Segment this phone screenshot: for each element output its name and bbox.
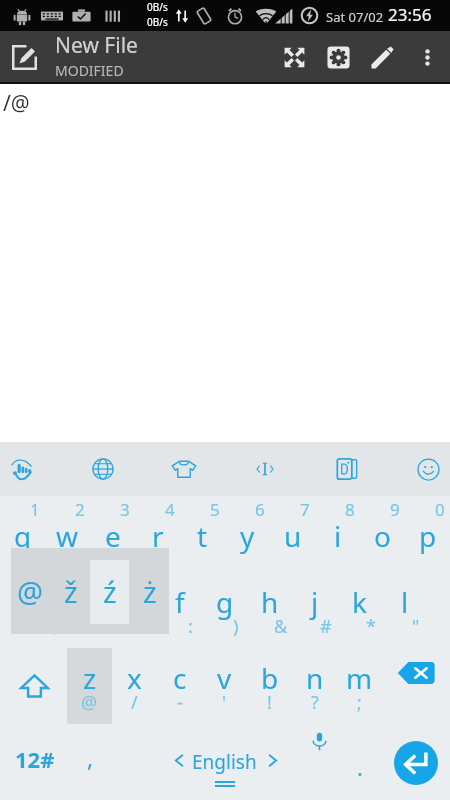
button[interactable]: a — [22, 572, 67, 648]
button[interactable]: k — [337, 572, 382, 648]
staticText: Sat 07/02 — [326, 8, 384, 26]
staticText: 7 — [300, 498, 310, 521]
staticText: & — [274, 614, 288, 639]
staticText: h — [261, 583, 279, 621]
button[interactable]: h — [247, 572, 292, 648]
button[interactable]: m — [337, 648, 382, 724]
button[interactable]: @ — [11, 560, 50, 624]
button[interactable]: b — [247, 648, 292, 724]
button[interactable]: 4 — [135, 496, 180, 572]
button[interactable]: 6 — [225, 496, 270, 572]
button[interactable]: 7 — [270, 496, 315, 572]
button[interactable]: 3 — [90, 496, 135, 572]
button[interactable]: Emoji — [401, 442, 450, 496]
staticText: 5 — [210, 498, 220, 521]
staticText: # — [320, 614, 332, 639]
button[interactable]: 9 — [360, 496, 405, 572]
button[interactable]: l — [382, 572, 427, 648]
button[interactable]: Theme — [157, 442, 211, 496]
button[interactable]: Language — [76, 442, 130, 496]
button[interactable]: New file — [0, 33, 48, 81]
staticText: k — [352, 583, 367, 621]
staticText: * — [366, 614, 376, 639]
staticText: i — [334, 517, 342, 555]
staticText: ß — [95, 614, 107, 639]
button[interactable]: 1 — [0, 496, 45, 572]
staticText: 9 — [390, 498, 400, 521]
staticText: e — [105, 517, 121, 555]
staticText: New File — [55, 31, 138, 60]
button[interactable]: ž — [51, 560, 90, 624]
button[interactable]: Settings — [316, 35, 360, 79]
button[interactable]: Fullscreen — [272, 35, 316, 79]
button[interactable]: 2 — [45, 496, 90, 572]
staticText: ' — [222, 690, 227, 715]
staticText: f — [175, 583, 185, 621]
button[interactable]: Voice input — [337, 724, 405, 800]
button[interactable]: g — [202, 572, 247, 648]
staticText: b — [261, 659, 279, 697]
button[interactable]: f — [157, 572, 202, 648]
staticText: @ — [47, 614, 64, 639]
button[interactable]: z — [67, 648, 112, 724]
button[interactable]: 12# — [0, 724, 67, 800]
button[interactable]: , — [67, 724, 112, 800]
staticText: c — [173, 659, 187, 697]
button[interactable]: ź — [90, 560, 129, 624]
staticText: n — [306, 659, 324, 697]
button[interactable]: s — [67, 572, 112, 648]
staticText: z — [83, 659, 97, 697]
button[interactable]: Clipboard — [320, 442, 374, 496]
staticText: , — [87, 742, 94, 773]
button[interactable]: 8 — [315, 496, 360, 572]
button[interactable]: d — [112, 572, 157, 648]
staticText: : — [188, 614, 193, 639]
staticText: m — [346, 659, 373, 697]
staticText: " — [412, 614, 420, 639]
staticText: ż — [143, 572, 157, 611]
staticText: u — [284, 517, 302, 555]
button[interactable]: Shift — [0, 648, 67, 724]
staticText: v — [217, 659, 232, 697]
staticText: y — [240, 517, 255, 555]
button[interactable]: n — [292, 648, 337, 724]
staticText: j — [311, 583, 319, 621]
staticText: 4 — [165, 498, 175, 521]
staticText: 0B/s — [147, 0, 168, 14]
staticText: ? — [311, 690, 319, 715]
staticText: . — [357, 752, 363, 782]
button[interactable]: x — [112, 648, 157, 724]
staticText: ž — [64, 572, 78, 611]
staticText: ź — [103, 572, 117, 611]
button[interactable]: v — [202, 648, 247, 724]
staticText: p — [419, 517, 437, 555]
button[interactable]: Backspace — [382, 648, 450, 724]
staticText: ; — [357, 690, 362, 715]
button[interactable]: Space — [112, 724, 337, 800]
staticText: l — [401, 583, 409, 621]
button[interactable]: c — [157, 648, 202, 724]
staticText: d — [126, 583, 144, 621]
staticText: 3 — [120, 498, 130, 521]
button[interactable]: 0 — [405, 496, 450, 572]
button[interactable]: More options — [408, 38, 446, 76]
staticText: 0 — [435, 498, 445, 521]
staticText: r — [152, 517, 164, 555]
button[interactable]: Edit — [360, 35, 404, 79]
button[interactable]: j — [292, 572, 337, 648]
staticText: English — [192, 749, 257, 775]
staticText: - — [177, 690, 183, 715]
button[interactable]: ż — [130, 560, 169, 624]
staticText: 8 — [345, 498, 355, 521]
staticText: @ — [81, 690, 98, 715]
button[interactable]: Gesture typing — [0, 442, 49, 496]
button[interactable]: Enter — [394, 741, 438, 785]
staticText: 23:56 — [388, 3, 432, 26]
staticText: q — [14, 517, 32, 555]
button[interactable]: Cursor control — [238, 442, 292, 496]
staticText: ) — [233, 614, 239, 639]
staticText: @ — [17, 572, 44, 611]
button[interactable]: 5 — [180, 496, 225, 572]
staticText: a — [37, 583, 53, 621]
staticText: t — [197, 517, 208, 555]
